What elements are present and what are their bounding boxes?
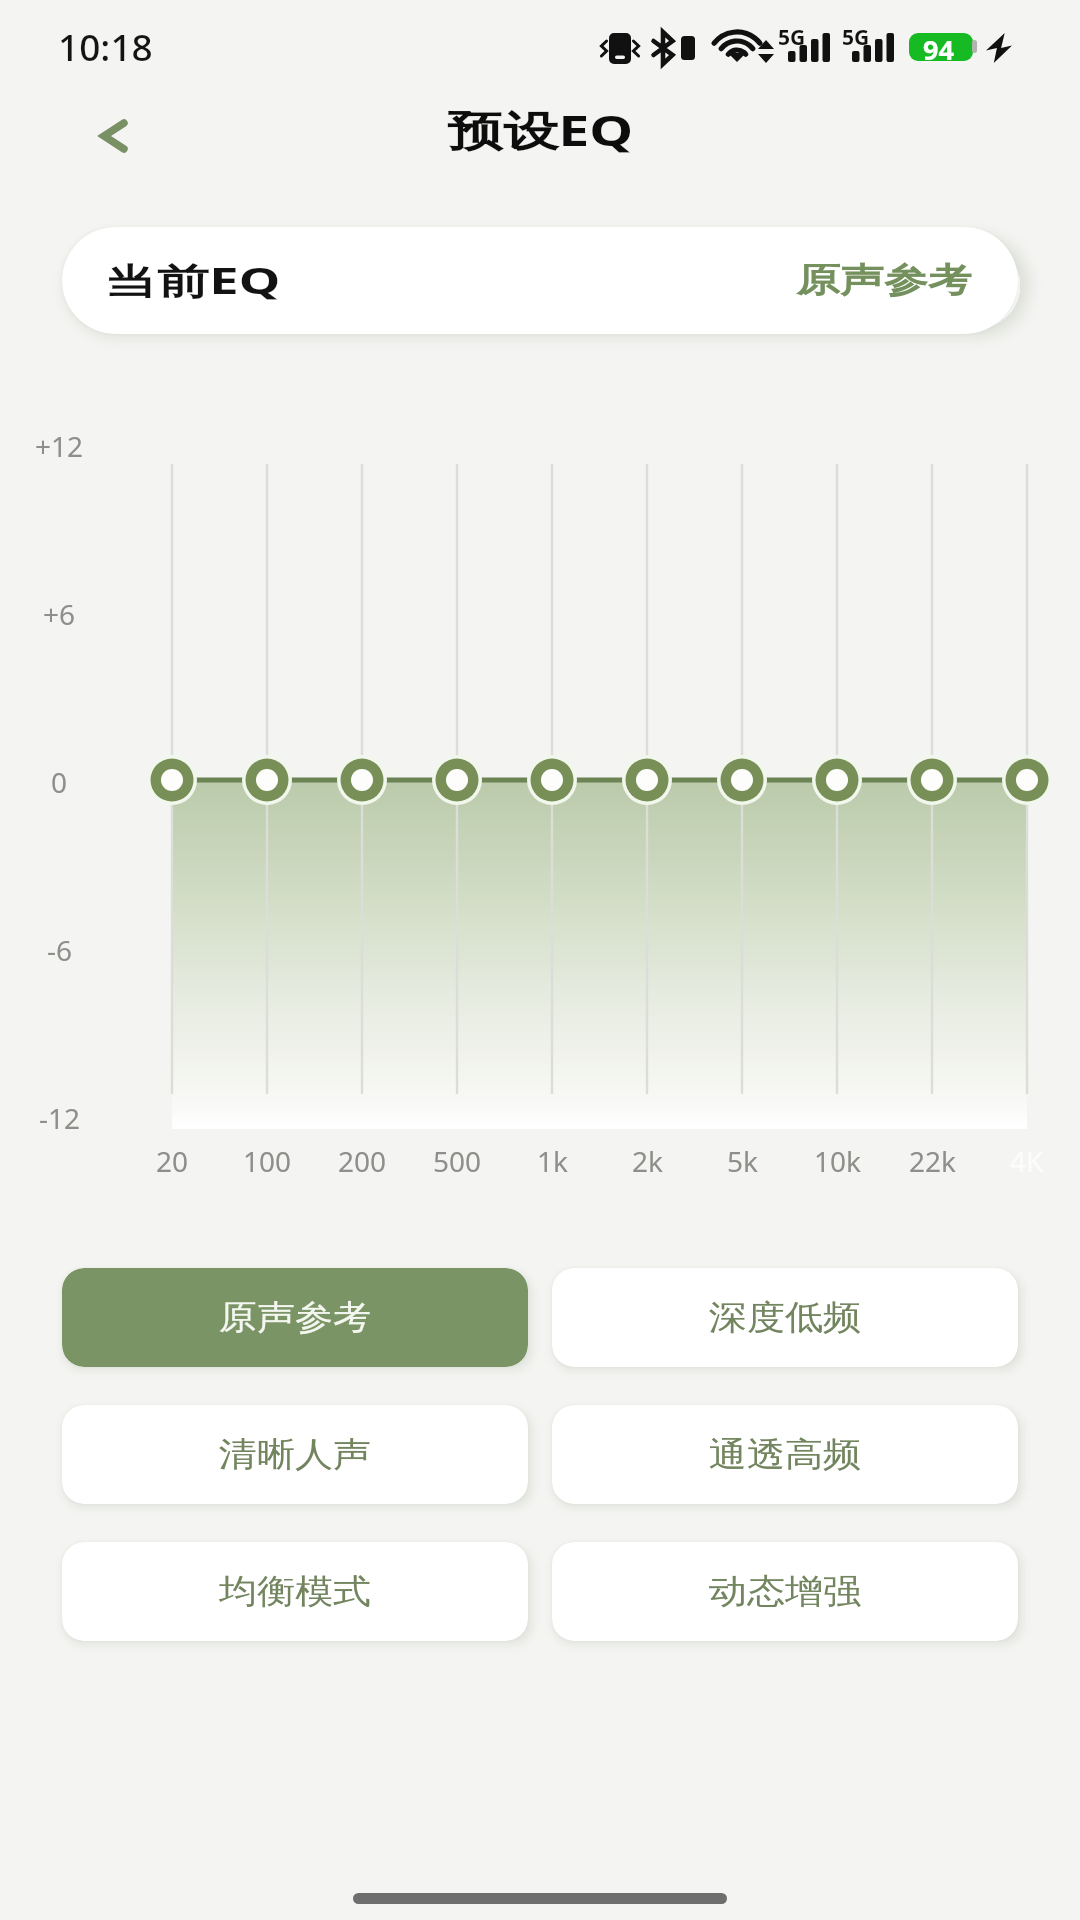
staticText: 1k <box>537 1142 568 1180</box>
staticText: +6 <box>43 595 76 633</box>
button[interactable]: 动态增强 <box>552 1542 1018 1641</box>
staticText: +12 <box>35 427 84 465</box>
button[interactable]: 清晰人声 <box>62 1405 528 1504</box>
staticText: 500 <box>433 1142 482 1180</box>
staticText: 5G <box>778 23 806 52</box>
staticText: 22k <box>909 1142 956 1180</box>
staticText: 通透高频 <box>709 1433 861 1476</box>
staticText: 当前EQ <box>104 256 281 305</box>
staticText: 原声参考 <box>219 1296 371 1339</box>
button[interactable]: 通透高频 <box>552 1405 1018 1504</box>
staticText: 10:18 <box>58 21 153 71</box>
staticText: 深度低频 <box>709 1296 861 1339</box>
staticText: 5G <box>842 23 870 52</box>
button[interactable]: Back <box>78 100 150 172</box>
staticText: 200 <box>338 1142 387 1180</box>
staticText: 10k <box>814 1142 861 1180</box>
staticText: 20 <box>156 1142 189 1180</box>
button[interactable]: 均衡模式 <box>62 1542 528 1641</box>
staticText: 94 <box>923 31 954 68</box>
staticText: 动态增强 <box>709 1570 861 1613</box>
staticText: 2k <box>632 1142 663 1180</box>
staticText: 5k <box>727 1142 758 1180</box>
staticText: -12 <box>39 1099 81 1137</box>
staticText: -6 <box>47 931 73 969</box>
button[interactable]: 深度低频 <box>552 1268 1018 1367</box>
staticText: 清晰人声 <box>219 1433 371 1476</box>
staticText: 均衡模式 <box>219 1570 371 1613</box>
staticText: 0 <box>51 763 68 801</box>
button[interactable]: 当前EQ <box>62 227 1018 334</box>
button[interactable]: 原声参考 <box>62 1268 528 1367</box>
staticText: 100 <box>243 1142 292 1180</box>
staticText: 预设EQ <box>447 101 633 158</box>
staticText: 4K <box>1010 1142 1044 1180</box>
staticText: 原声参考 <box>796 259 972 302</box>
